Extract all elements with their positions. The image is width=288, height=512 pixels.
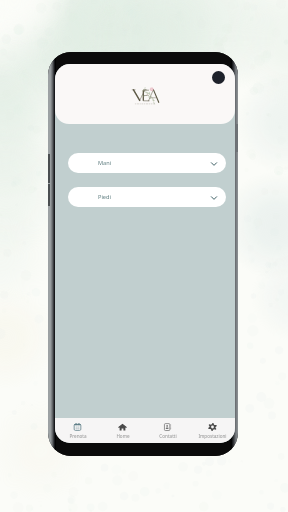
button[interactable]: Mani [68, 153, 226, 173]
button[interactable]: Contatti [145, 418, 190, 443]
staticText: Prenota [69, 433, 87, 439]
button[interactable]: Impostazioni [190, 418, 235, 443]
staticText: Home [116, 433, 130, 439]
button[interactable]: Prenota [55, 418, 100, 443]
staticText: Contatti [159, 433, 177, 439]
staticText: Impostazioni [198, 433, 227, 439]
staticText: Piedi [98, 193, 111, 201]
staticText: Mani [98, 159, 112, 167]
button[interactable]: Home [100, 418, 145, 443]
button[interactable]: Piedi [68, 187, 226, 207]
